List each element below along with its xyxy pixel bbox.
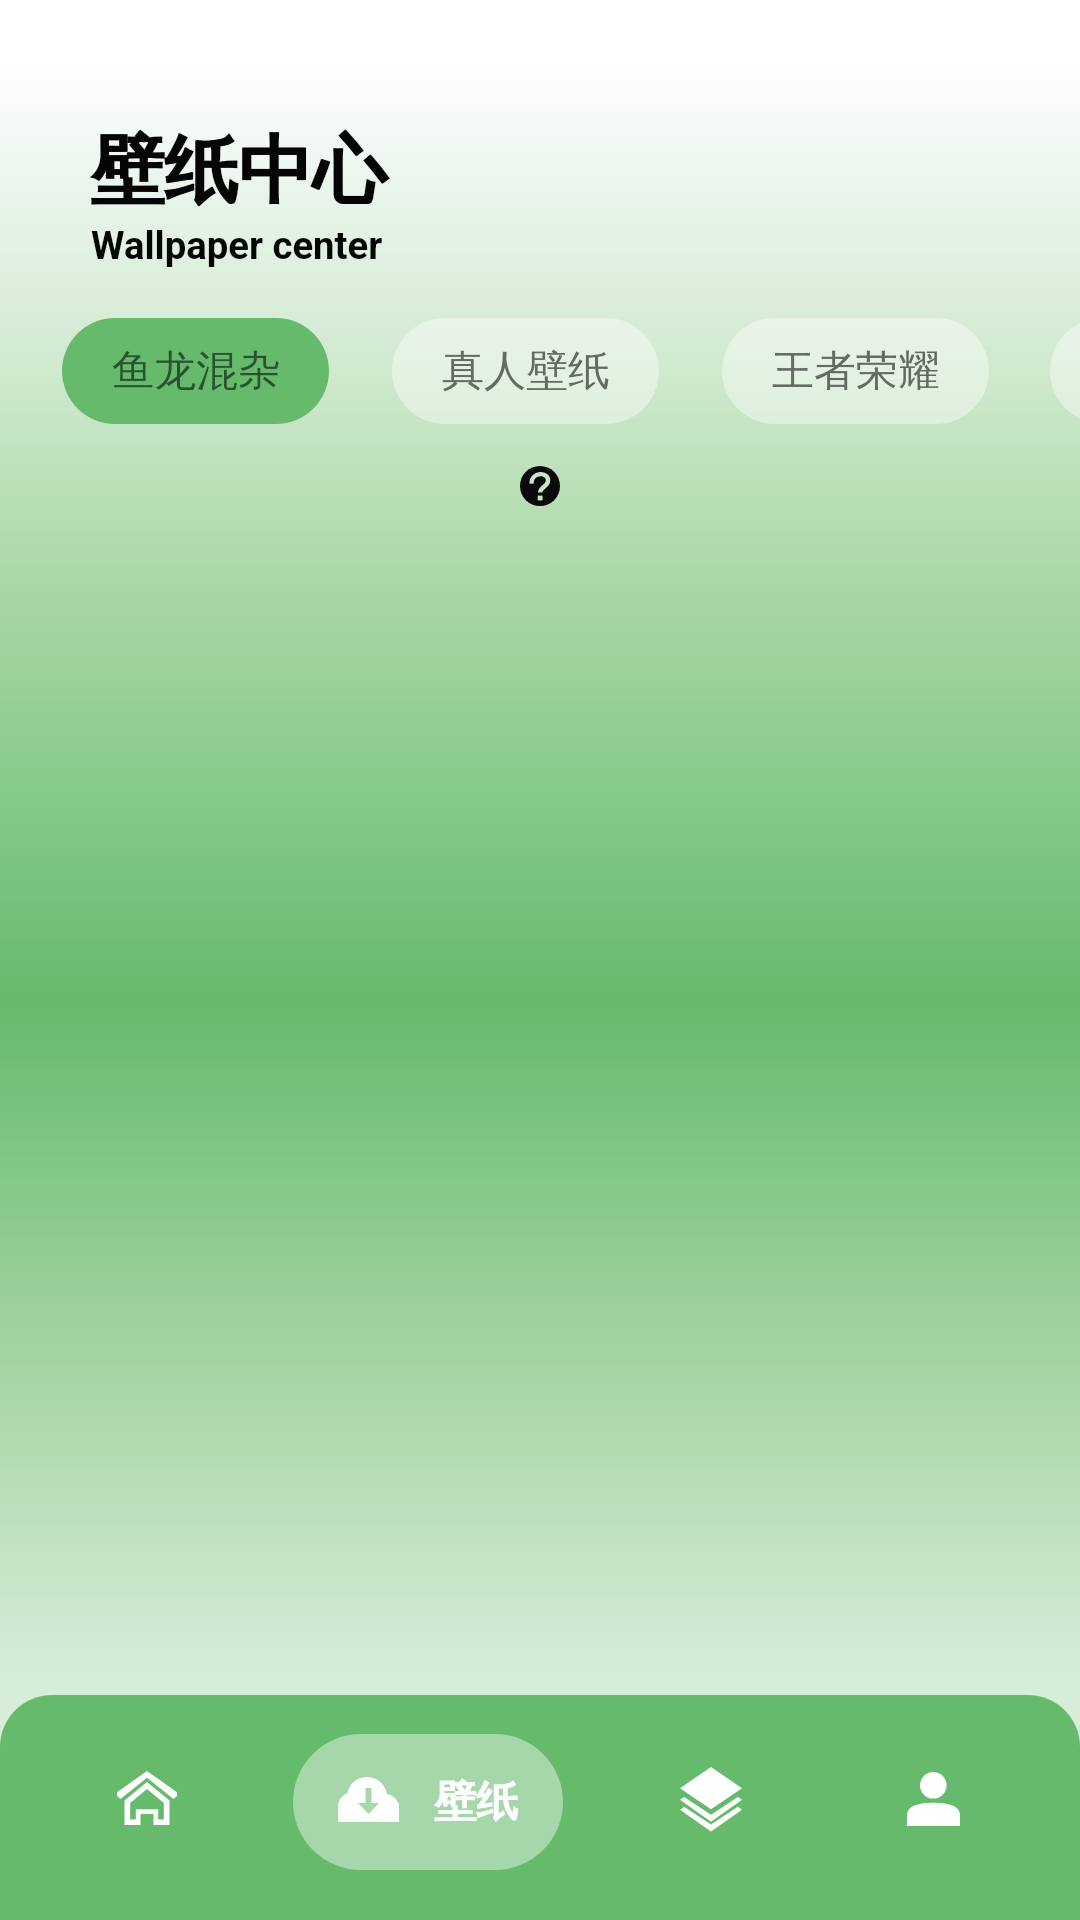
button[interactable]: Profile [828,1695,1038,1901]
staticText: 壁纸中心 [91,125,387,218]
button[interactable]: Categories [606,1695,816,1901]
button[interactable]: 原神壁纸 [1050,318,1080,424]
button[interactable]: 真人壁纸 [392,318,659,424]
staticText: 壁纸 [434,1776,518,1829]
button[interactable]: 壁纸 [293,1734,563,1870]
staticText: 真人壁纸 [442,345,610,398]
button[interactable]: Home [42,1695,252,1900]
button[interactable]: 鱼龙混杂 [62,318,329,424]
staticText: 王者荣耀 [772,345,940,398]
staticText: Wallpaper center [91,223,383,268]
button[interactable]: Help [520,466,560,506]
staticText: 壁纸中心 [90,125,386,218]
button[interactable]: 王者荣耀 [722,318,989,424]
staticText: 鱼龙混杂 [112,345,280,398]
